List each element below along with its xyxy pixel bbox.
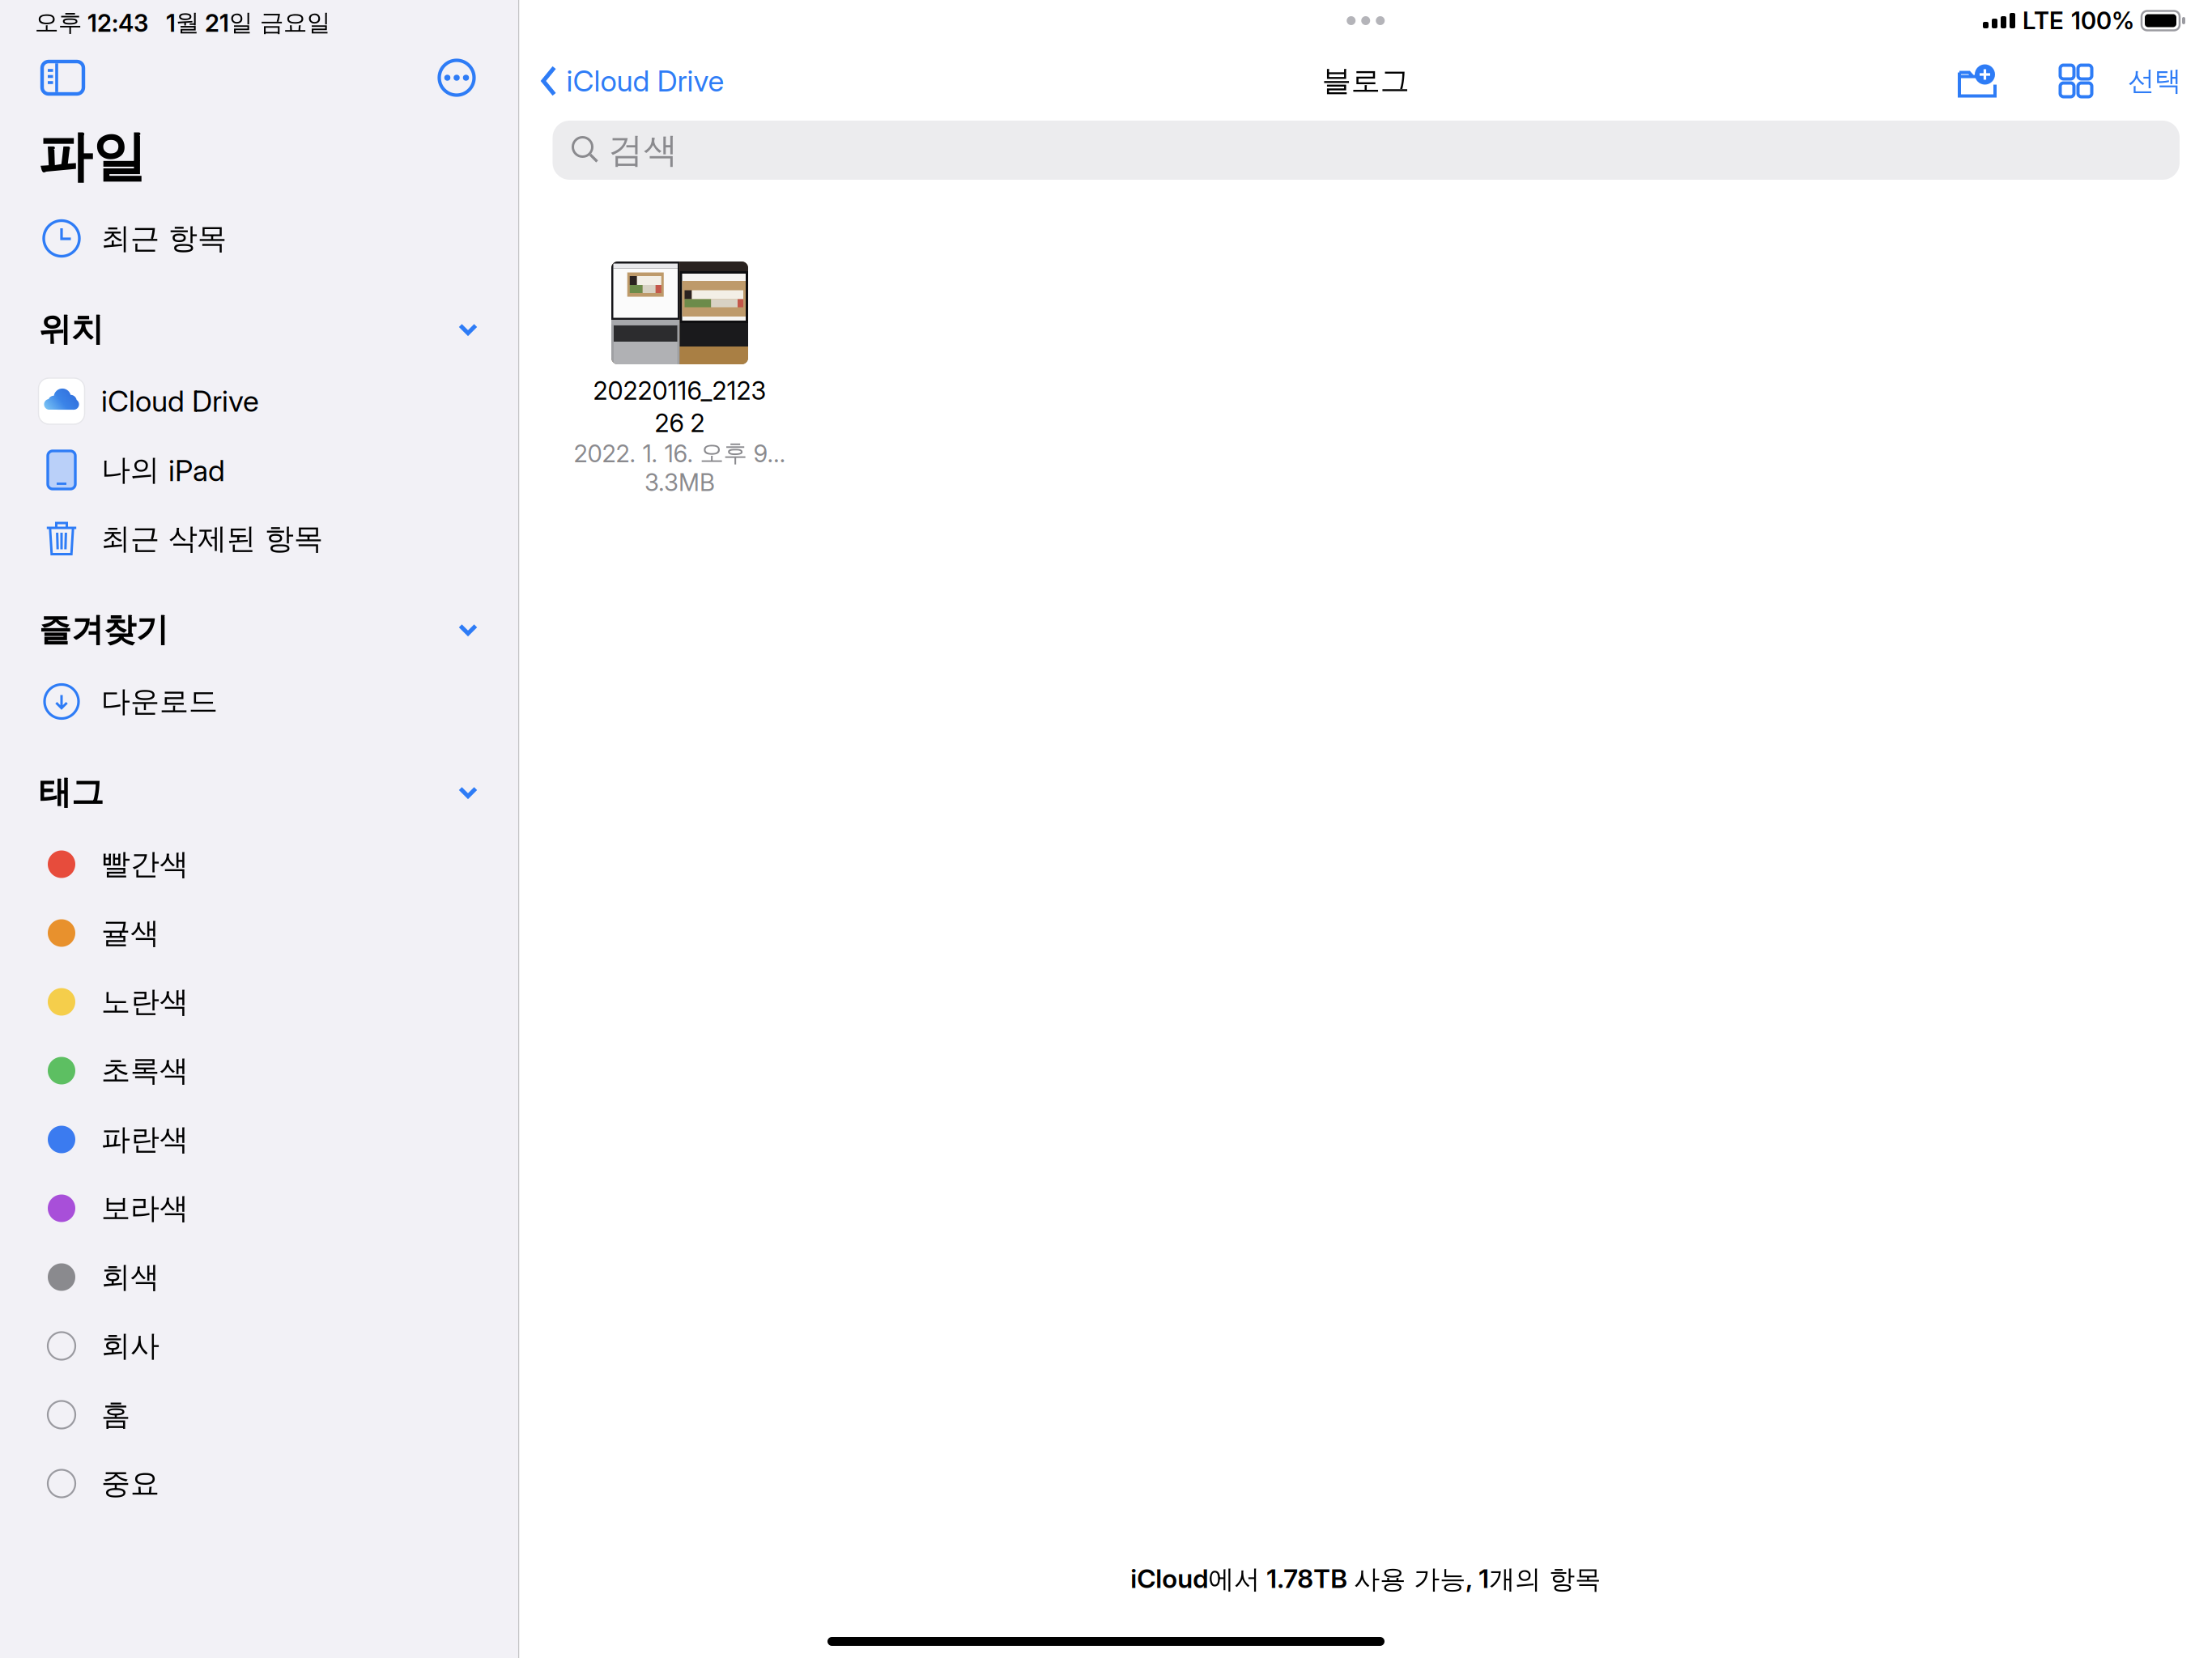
button[interactable]: 최근 삭제된 항목 — [0, 504, 518, 573]
staticText: 귤색 — [101, 915, 160, 951]
button[interactable]: 최근 항목 — [0, 204, 518, 273]
staticText: 초록색 — [101, 1052, 189, 1089]
button[interactable]: Toggle Sidebar — [28, 45, 98, 110]
button[interactable]: 파란색 — [0, 1105, 518, 1174]
button[interactable]: Collapse 위치 — [443, 292, 493, 367]
staticText: 빨간색 — [101, 846, 189, 883]
staticText: 최근 항목 — [101, 220, 227, 257]
staticText: 최근 삭제된 항목 — [101, 520, 323, 557]
staticText: 태그 — [39, 772, 104, 813]
button[interactable]: Collapse 태그 — [443, 755, 493, 830]
staticText: iCloud Drive — [101, 383, 259, 419]
button[interactable]: iCloud Drive — [0, 367, 518, 436]
staticText: 오후 12:43 — [35, 8, 148, 38]
staticText: 나의 iPad — [101, 452, 225, 488]
button[interactable]: 20220116_2123 — [570, 261, 789, 497]
staticText: 홈 — [101, 1396, 130, 1433]
staticText: 보라색 — [101, 1190, 189, 1227]
staticText: 즐겨찾기 — [39, 609, 168, 650]
button[interactable]: More — [426, 45, 487, 110]
button[interactable]: iCloud Drive — [540, 55, 724, 107]
button[interactable]: Grid View — [2037, 55, 2115, 107]
button[interactable]: Collapse 즐겨찾기 — [443, 593, 493, 667]
staticText: LTE — [2023, 6, 2064, 35]
staticText: 20220116_2123 — [593, 376, 766, 406]
staticText: iCloud Drive — [566, 63, 724, 99]
staticText: 2022. 1. 16. 오후 9… — [574, 438, 786, 468]
button[interactable]: 선택 — [2115, 55, 2181, 107]
button[interactable]: 홈 — [0, 1380, 518, 1449]
staticText: 파란색 — [101, 1121, 189, 1158]
button[interactable]: 보라색 — [0, 1174, 518, 1243]
button[interactable]: 귤색 — [0, 899, 518, 967]
staticText: 위치 — [39, 309, 104, 350]
staticText: 회색 — [101, 1259, 160, 1295]
button[interactable]: 회사 — [0, 1312, 518, 1380]
staticText: 1월 21일 금요일 — [166, 8, 330, 38]
button[interactable]: 나의 iPad — [0, 436, 518, 504]
staticText: 블로그 — [1322, 63, 1409, 99]
button[interactable]: 다운로드 — [0, 667, 518, 736]
button[interactable]: 초록색 — [0, 1036, 518, 1105]
staticText: 100% — [2071, 6, 2134, 35]
staticText: 검색 — [608, 128, 678, 172]
staticText: 회사 — [101, 1328, 160, 1364]
staticText: 파일 — [38, 123, 147, 191]
button[interactable]: 노란색 — [0, 967, 518, 1036]
staticText: 다운로드 — [101, 683, 218, 720]
button[interactable]: 회색 — [0, 1243, 518, 1312]
staticText: 26 2 — [655, 408, 705, 438]
staticText: 중요 — [101, 1465, 160, 1502]
staticText: 3.3MB — [644, 468, 715, 497]
button[interactable]: New Folder — [1917, 55, 2037, 107]
staticText: 선택 — [2128, 64, 2181, 98]
button[interactable]: 중요 — [0, 1449, 518, 1518]
staticText: iCloud에서 1.78TB 사용 가능, 1개의 항목 — [1130, 1563, 1601, 1596]
button[interactable]: 빨간색 — [0, 830, 518, 899]
staticText: 노란색 — [101, 983, 189, 1020]
